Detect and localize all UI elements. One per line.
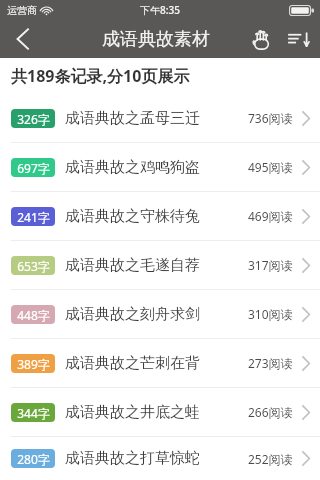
button[interactable]: 653字 — [0, 241, 320, 289]
staticText: 653字 — [17, 258, 50, 274]
staticText: 成语典故之鸡鸣狗盗 — [65, 158, 200, 177]
staticText: 成语典故之芒刺在背 — [65, 354, 200, 373]
staticText: 697字 — [17, 160, 50, 176]
button[interactable]: 280字 — [0, 437, 320, 480]
button[interactable]: 344字 — [0, 388, 320, 436]
button[interactable]: Sort — [280, 20, 320, 58]
staticText: 运营商 — [7, 4, 37, 17]
staticText: 共189条记录,分10页展示 — [11, 65, 190, 87]
staticText: 成语典故之守株待兔 — [65, 207, 200, 226]
staticText: 326字 — [17, 111, 50, 127]
staticText: 成语典故之井底之蛙 — [65, 403, 200, 422]
staticText: 成语典故之刻舟求剑 — [65, 305, 200, 324]
staticText: 344字 — [17, 405, 50, 421]
button[interactable]: 697字 — [0, 143, 320, 191]
staticText: 317阅读 — [248, 257, 293, 273]
staticText: 736阅读 — [248, 110, 293, 126]
staticText: 成语典故之毛遂自荐 — [65, 256, 200, 275]
staticText: 266阅读 — [248, 404, 293, 420]
staticText: 成语典故之孟母三迁 — [65, 109, 200, 128]
staticText: 389字 — [17, 356, 50, 372]
button[interactable]: 326字 — [0, 94, 320, 142]
button[interactable]: 389字 — [0, 339, 320, 387]
button[interactable]: 241字 — [0, 192, 320, 240]
staticText: 448字 — [17, 307, 50, 323]
staticText: 273阅读 — [248, 355, 293, 371]
staticText: 310阅读 — [248, 306, 293, 322]
staticText: 495阅读 — [248, 159, 293, 175]
staticText: 下午8:35 — [140, 3, 180, 17]
staticText: 280字 — [17, 451, 50, 467]
button[interactable]: Back — [0, 20, 44, 58]
button[interactable]: Hand — [242, 20, 280, 58]
staticText: 241字 — [17, 209, 50, 225]
staticText: 成语典故之打草惊蛇 — [65, 449, 200, 468]
staticText: 252阅读 — [248, 451, 293, 467]
button[interactable]: 448字 — [0, 290, 320, 338]
staticText: 成语典故素材 — [102, 28, 210, 51]
staticText: 469阅读 — [248, 208, 293, 224]
